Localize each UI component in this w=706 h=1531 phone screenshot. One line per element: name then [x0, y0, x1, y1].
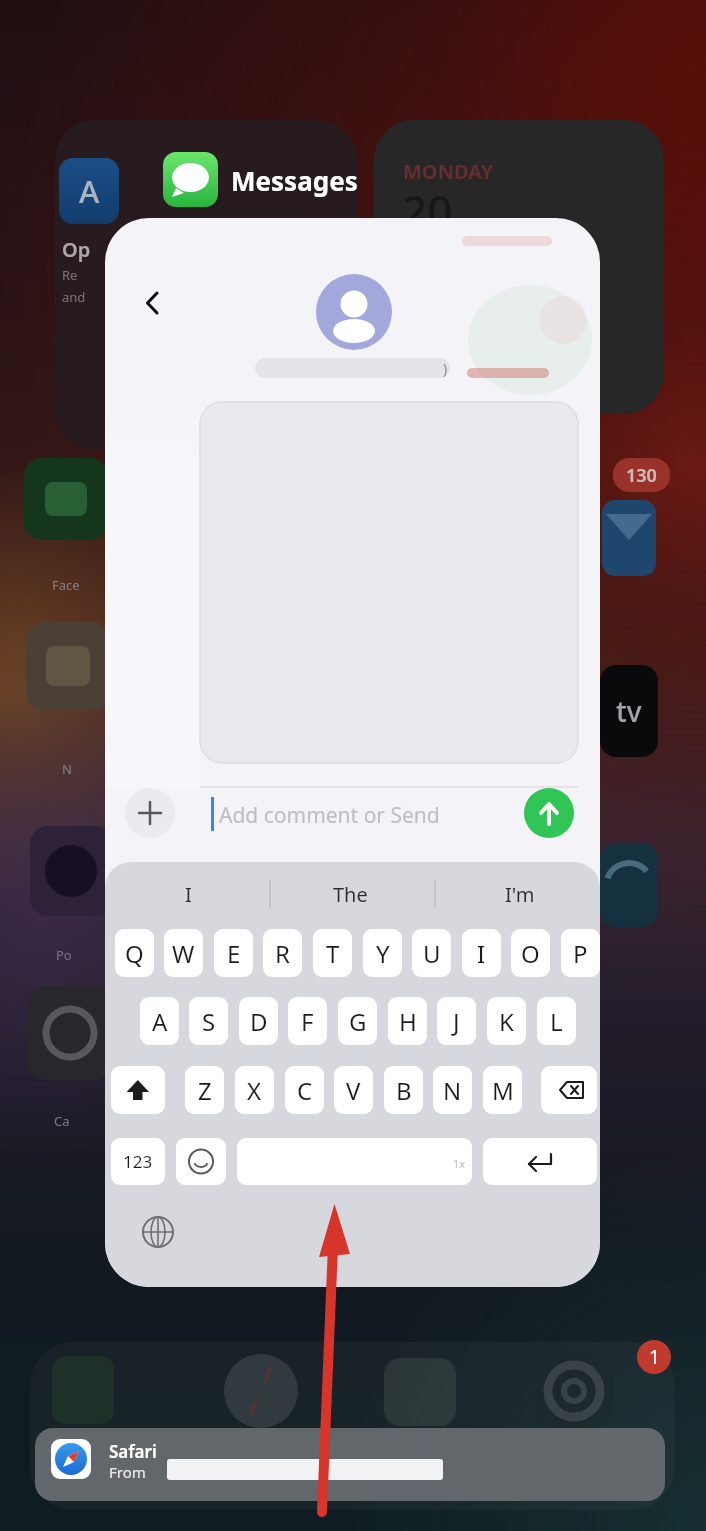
- button[interactable]: I'm: [470, 876, 570, 912]
- staticText: G: [349, 1005, 367, 1038]
- staticText: N: [443, 1074, 462, 1107]
- button[interactable]: I: [138, 876, 238, 912]
- staticText: 1x: [453, 1156, 466, 1171]
- button[interactable]: [138, 1212, 178, 1252]
- button[interactable]: Q: [115, 929, 154, 977]
- staticText: X: [247, 1074, 262, 1107]
- staticText: Z: [198, 1074, 212, 1107]
- staticText: Op: [62, 236, 91, 263]
- staticText: 130: [626, 463, 657, 488]
- button[interactable]: E: [214, 929, 253, 977]
- staticText: Messages: [231, 163, 358, 198]
- button[interactable]: O: [511, 929, 550, 977]
- button[interactable]: P: [561, 929, 600, 977]
- staticText: I'm: [505, 881, 535, 908]
- staticText: 123: [123, 1150, 153, 1173]
- button[interactable]: L: [537, 997, 576, 1045]
- button[interactable]: V: [334, 1066, 373, 1114]
- button[interactable]: T: [313, 929, 352, 977]
- button[interactable]: [125, 788, 175, 838]
- button[interactable]: N: [433, 1066, 472, 1114]
- button[interactable]: [483, 1138, 597, 1185]
- staticText: 20: [402, 180, 453, 240]
- button[interactable]: [176, 1138, 226, 1185]
- button[interactable]: D: [239, 997, 278, 1045]
- button[interactable]: Y: [363, 929, 402, 977]
- staticText: J: [453, 1005, 460, 1038]
- button[interactable]: W: [164, 929, 203, 977]
- staticText: M: [492, 1074, 514, 1107]
- staticText: Re: [62, 266, 78, 284]
- button[interactable]: [541, 1066, 597, 1114]
- staticText: P: [573, 937, 588, 970]
- button[interactable]: [524, 788, 574, 838]
- staticText: and: [62, 288, 86, 306]
- staticText: D: [250, 1005, 268, 1038]
- staticText: The: [333, 881, 368, 908]
- button[interactable]: F: [288, 997, 327, 1045]
- staticText: S: [202, 1005, 216, 1038]
- button[interactable]: R: [263, 929, 302, 977]
- staticText: F: [301, 1005, 314, 1038]
- button[interactable]: A: [140, 997, 179, 1045]
- button[interactable]: H: [388, 997, 427, 1045]
- staticText: O: [521, 937, 540, 970]
- button[interactable]: The: [300, 876, 400, 912]
- staticText: From: [109, 1462, 146, 1482]
- staticText: B: [396, 1074, 412, 1107]
- staticText: L: [550, 1005, 563, 1038]
- staticText: H: [399, 1005, 417, 1038]
- button[interactable]: 123: [111, 1138, 165, 1185]
- staticText: W: [172, 937, 195, 970]
- button[interactable]: C: [285, 1066, 324, 1114]
- button[interactable]: [111, 1066, 165, 1114]
- staticText: K: [499, 1005, 514, 1038]
- button[interactable]: Safari: [35, 1428, 665, 1501]
- staticText: I: [185, 881, 192, 908]
- button[interactable]: [130, 281, 174, 325]
- staticText: Ca: [54, 1112, 70, 1130]
- staticText: A: [79, 170, 100, 212]
- button[interactable]: U: [412, 929, 451, 977]
- staticText: MONDAY: [403, 158, 494, 185]
- button[interactable]: G: [338, 997, 377, 1045]
- staticText: T: [326, 937, 340, 970]
- staticText: tv: [616, 692, 642, 730]
- staticText: A: [152, 1005, 168, 1038]
- button[interactable]: [237, 1138, 472, 1185]
- button[interactable]: B: [384, 1066, 423, 1114]
- staticText: Safari: [109, 1440, 157, 1463]
- staticText: Face: [52, 576, 80, 594]
- button[interactable]: S: [189, 997, 228, 1045]
- button[interactable]: K: [487, 997, 526, 1045]
- staticText: V: [346, 1074, 361, 1107]
- button[interactable]: [190, 789, 520, 837]
- staticText: U: [423, 937, 441, 970]
- staticText: N: [62, 760, 72, 778]
- button[interactable]: J: [437, 997, 476, 1045]
- staticText: C: [297, 1074, 313, 1107]
- button[interactable]: Z: [185, 1066, 224, 1114]
- staticText: I: [477, 937, 486, 970]
- staticText: Q: [125, 937, 144, 970]
- staticText: ): [443, 359, 448, 378]
- button[interactable]: [163, 152, 218, 207]
- button[interactable]: M: [483, 1066, 522, 1114]
- staticText: R: [275, 937, 290, 970]
- staticText: Add comment or Send: [219, 801, 440, 830]
- staticText: E: [227, 937, 241, 970]
- staticText: Y: [376, 937, 390, 970]
- staticText: 1: [649, 1344, 660, 1370]
- button[interactable]: X: [235, 1066, 274, 1114]
- button[interactable]: I: [462, 929, 501, 977]
- staticText: Po: [56, 946, 72, 964]
